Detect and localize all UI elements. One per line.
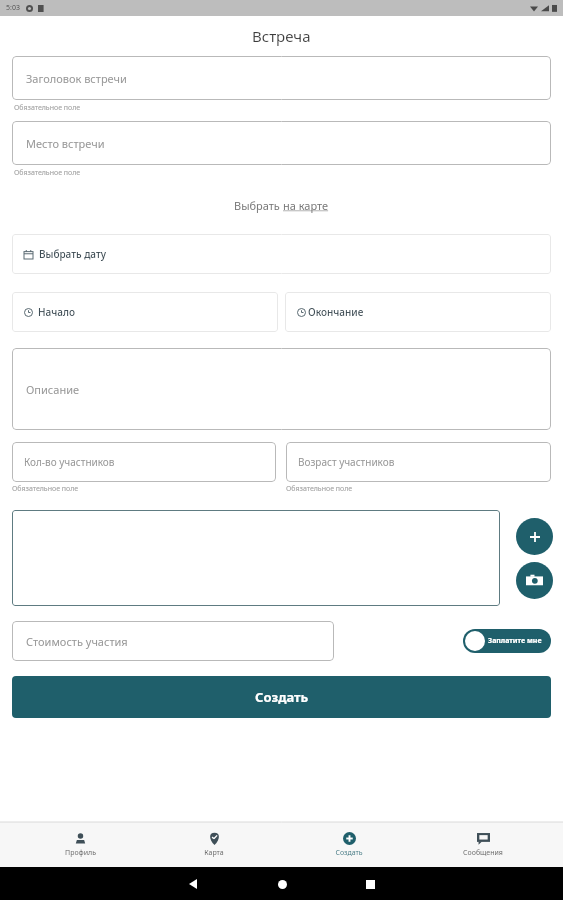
staticText: Стоимость участия	[26, 634, 128, 649]
staticText: 5:03	[6, 3, 20, 13]
button[interactable]: Recent apps	[355, 869, 385, 899]
staticText: Выбрать	[234, 198, 283, 213]
staticText: Кол-во участников	[24, 455, 115, 469]
button[interactable]: Окончание	[285, 292, 551, 332]
button[interactable]: Профиль	[25, 822, 135, 867]
staticText: на карте	[283, 198, 329, 213]
button[interactable]: Выбрать	[0, 192, 563, 218]
button[interactable]: Возраст участников	[286, 442, 551, 482]
button[interactable]: Карта	[159, 822, 269, 867]
staticText: Карта	[204, 848, 224, 858]
button[interactable]: Описание	[12, 348, 551, 430]
button[interactable]: Стоимость участия	[12, 621, 334, 661]
button[interactable]: Место встречи	[12, 121, 551, 165]
staticText: Обязательное поле	[14, 168, 81, 178]
button[interactable]: Заголовок встречи	[12, 56, 551, 100]
button[interactable]: Кол-во участников	[12, 442, 276, 482]
staticText: Обязательное поле	[12, 484, 79, 494]
staticText: Окончание	[308, 305, 364, 319]
staticText: Обязательное поле	[286, 484, 353, 494]
button[interactable]: Выбрать дату	[12, 234, 551, 274]
button[interactable]: Заплатите мне	[463, 629, 551, 653]
staticText: Встреча	[252, 26, 311, 46]
button[interactable]: Создать	[12, 676, 551, 718]
staticText: Возраст участников	[298, 455, 395, 469]
button[interactable]: Back	[179, 869, 209, 899]
staticText: Описание	[26, 382, 80, 397]
button[interactable]	[12, 510, 500, 606]
button[interactable]: Сообщения	[428, 822, 538, 867]
button[interactable]: Take photo	[516, 562, 553, 599]
staticText: Заголовок встречи	[26, 71, 127, 86]
button[interactable]: Создать	[294, 822, 404, 867]
staticText: Профиль	[65, 848, 96, 858]
staticText: Заплатите мне	[488, 636, 542, 646]
staticText: Сообщения	[463, 848, 503, 858]
staticText: Обязательное поле	[14, 103, 81, 113]
staticText: Выбрать дату	[39, 247, 106, 261]
staticText: Начало	[38, 305, 75, 319]
button[interactable]: Add photo	[516, 518, 553, 555]
button[interactable]: Начало	[12, 292, 278, 332]
staticText: Создать	[335, 848, 363, 858]
staticText: Создать	[255, 688, 309, 706]
staticText: Место встречи	[26, 136, 105, 151]
button[interactable]: Home	[267, 869, 297, 899]
